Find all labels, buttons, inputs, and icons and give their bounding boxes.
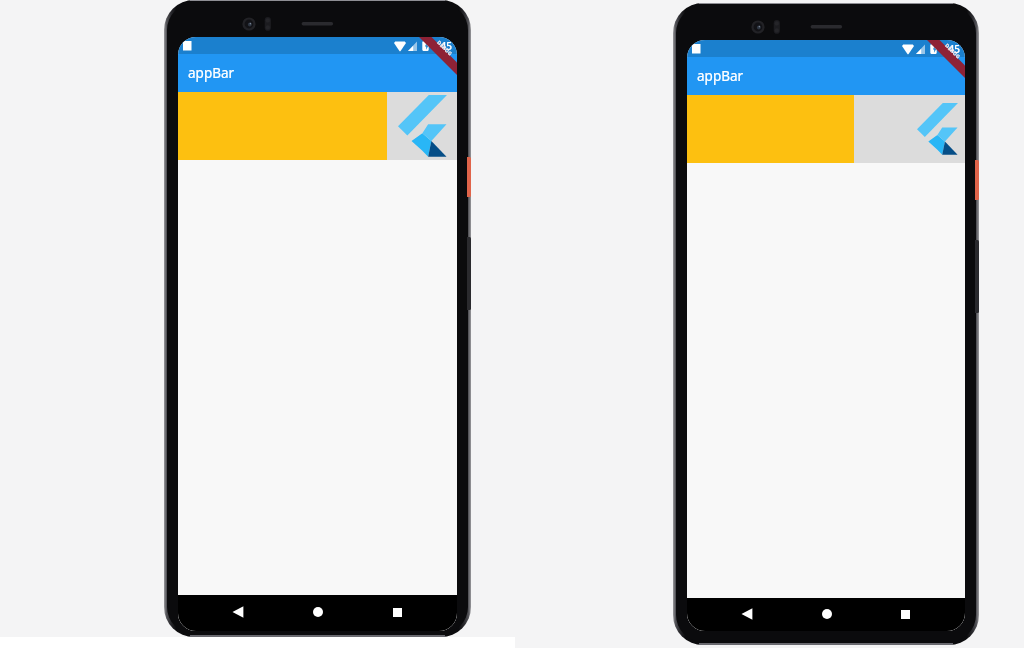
button[interactable]: appBar: [687, 57, 965, 95]
staticText: DEBUG: [435, 39, 454, 58]
staticText: 2:45: [432, 39, 452, 53]
staticText: 2:45: [940, 42, 960, 56]
button[interactable]: Recent apps: [845, 598, 965, 631]
button[interactable]: Back: [687, 598, 807, 631]
button[interactable]: appBar: [178, 54, 457, 92]
staticText: appBar: [188, 64, 235, 82]
button[interactable]: Home: [807, 598, 846, 631]
staticText: DEBUG: [943, 42, 962, 61]
button[interactable]: Back: [178, 595, 298, 631]
button[interactable]: Home: [298, 595, 337, 631]
staticText: appBar: [697, 67, 744, 85]
button[interactable]: Recent apps: [337, 595, 457, 631]
